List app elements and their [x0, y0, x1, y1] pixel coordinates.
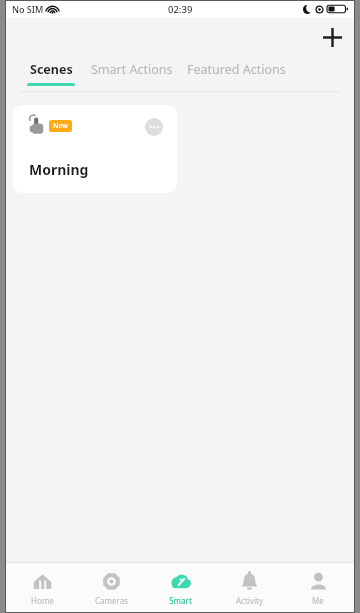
button[interactable]: Cameras: [79, 567, 143, 610]
button[interactable]: Me: [286, 567, 350, 610]
button[interactable]: Smart: [148, 567, 212, 610]
staticText: Scenes: [30, 61, 73, 78]
staticText: Cameras: [95, 595, 128, 606]
button[interactable]: Scenes: [27, 56, 75, 91]
staticText: Me: [312, 595, 324, 606]
button[interactable]: Smart Actions: [91, 56, 173, 91]
staticText: 02:39: [168, 3, 193, 16]
button[interactable]: Home: [10, 567, 74, 610]
staticText: Smart: [169, 595, 192, 606]
button[interactable]: Featured Actions: [187, 56, 286, 91]
button[interactable]: New: [13, 105, 177, 193]
staticText: New: [53, 121, 68, 131]
staticText: Featured Actions: [187, 61, 286, 78]
staticText: Home: [31, 595, 54, 606]
staticText: No SIM: [12, 3, 44, 15]
button[interactable]: More options: [145, 118, 163, 136]
staticText: Smart Actions: [91, 61, 173, 78]
staticText: Activity: [236, 595, 263, 606]
button[interactable]: Activity: [217, 567, 281, 610]
button[interactable]: Add: [317, 22, 347, 52]
staticText: Morning: [29, 160, 89, 179]
